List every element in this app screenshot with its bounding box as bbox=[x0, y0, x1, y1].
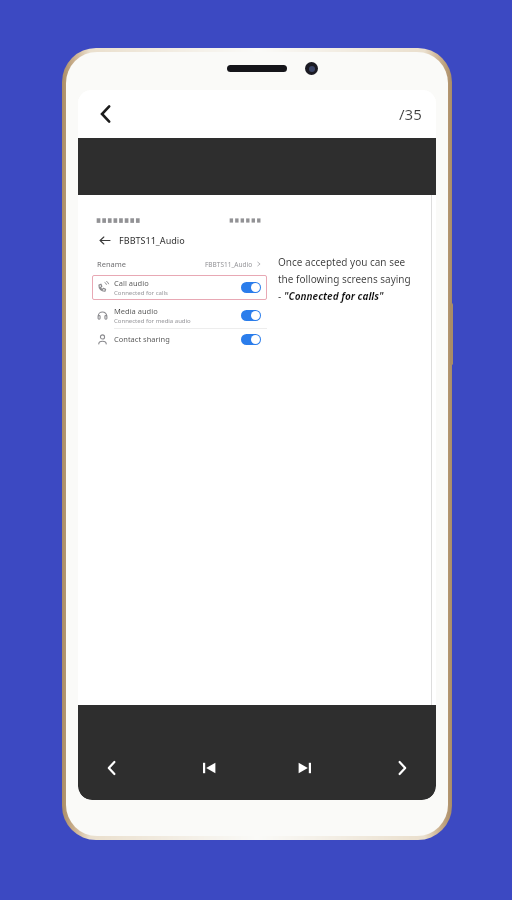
staticText: Contact sharing bbox=[114, 334, 170, 344]
staticText: Call audio bbox=[114, 278, 149, 288]
staticText: Media audio bbox=[114, 306, 158, 316]
button[interactable]: Skip next bbox=[285, 748, 325, 788]
staticText: /35 bbox=[399, 104, 422, 124]
staticText: FBBTS11_Audio bbox=[119, 234, 185, 246]
staticText: Rename bbox=[97, 259, 126, 269]
button[interactable]: Skip previous bbox=[189, 748, 229, 788]
button[interactable]: Back bbox=[86, 94, 126, 134]
button[interactable]: Media audio bbox=[97, 303, 261, 328]
button[interactable]: Toggle on bbox=[241, 310, 261, 321]
button[interactable]: Contact sharing bbox=[97, 329, 261, 349]
button[interactable]: Next section bbox=[382, 748, 422, 788]
button[interactable]: Toggle on bbox=[241, 282, 261, 293]
staticText: FBBTS11_Audio bbox=[205, 260, 253, 269]
staticText: Connected for media audio bbox=[114, 317, 191, 325]
button[interactable]: Toggle on bbox=[241, 334, 261, 345]
button[interactable]: Back bbox=[96, 232, 112, 248]
button[interactable]: Rename bbox=[97, 259, 262, 269]
staticText: Once accepted you can see bbox=[278, 255, 406, 269]
staticText: - bbox=[278, 289, 284, 303]
staticText: "Connected for calls" bbox=[284, 289, 384, 303]
button[interactable]: Previous section bbox=[92, 748, 132, 788]
button[interactable]: Call audio bbox=[97, 275, 261, 300]
staticText: the following screens saying bbox=[278, 272, 411, 286]
staticText: Connected for calls bbox=[114, 289, 168, 297]
button[interactable]: Call audio bbox=[92, 275, 267, 300]
